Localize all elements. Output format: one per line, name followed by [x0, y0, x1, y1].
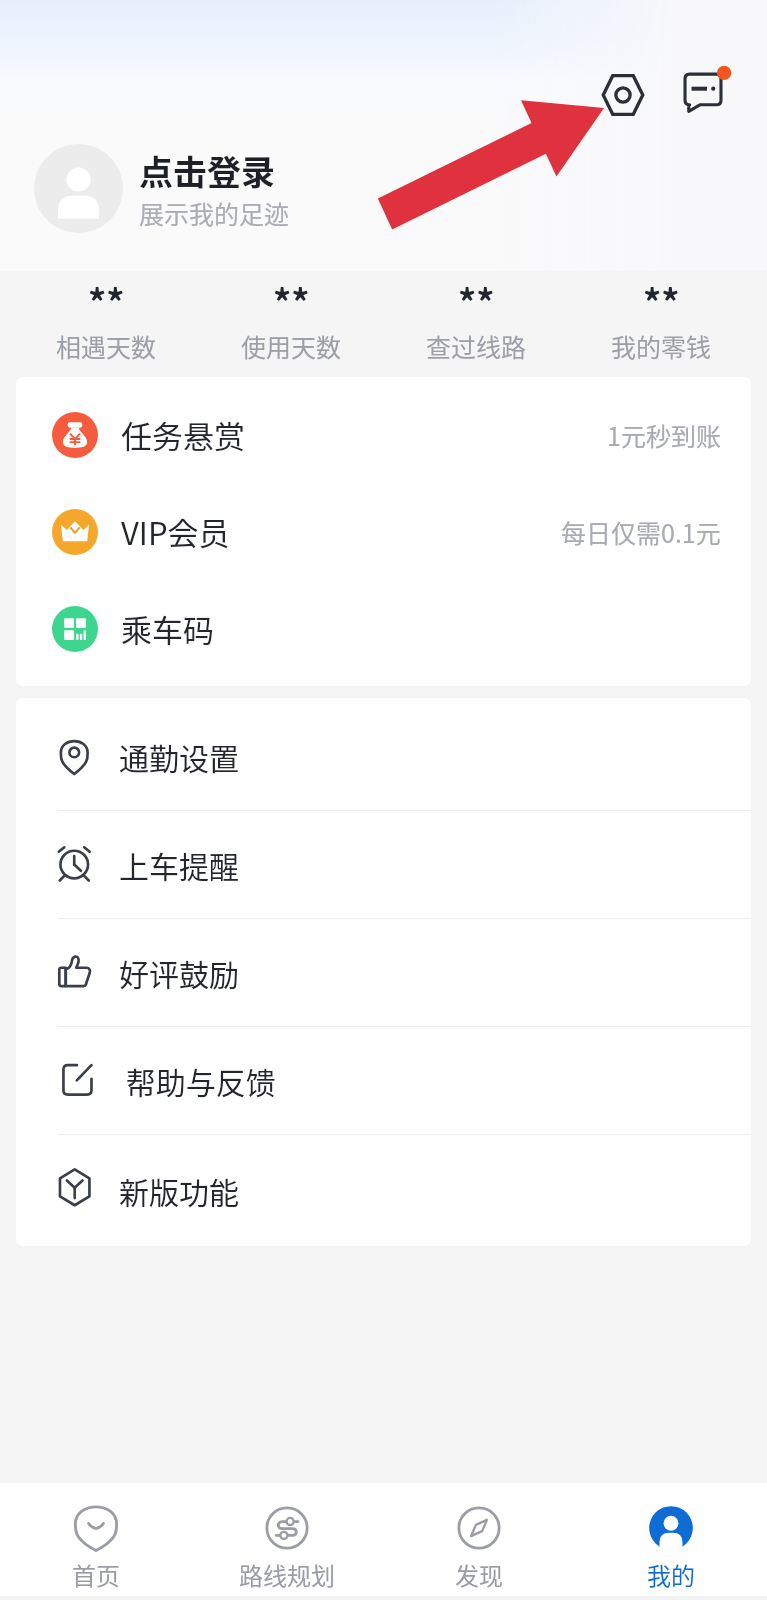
staticText: 使用天数 [241, 328, 342, 364]
button[interactable]: 任务悬赏 [16, 386, 751, 483]
button[interactable]: 首页 [0, 1504, 191, 1596]
button[interactable]: Messages [672, 58, 734, 120]
staticText: 好评鼓励 [119, 951, 239, 994]
button[interactable]: VIP会员 [16, 483, 751, 580]
button[interactable]: 通勤设置 [16, 703, 751, 811]
staticText: 每日仅需0.1元 [561, 514, 721, 550]
staticText: 展示我的足迹 [139, 195, 290, 231]
staticText: 1元秒到账 [607, 417, 721, 453]
staticText: VIP会员 [121, 509, 230, 554]
staticText: 路线规划 [239, 1557, 335, 1592]
button[interactable]: 发现 [383, 1504, 575, 1596]
button[interactable]: 乘车码 [16, 580, 751, 677]
staticText: 新版功能 [119, 1169, 239, 1212]
staticText: ** [273, 274, 310, 326]
button[interactable]: ** [384, 271, 569, 375]
staticText: 帮助与反馈 [119, 1059, 276, 1102]
button[interactable]: Settings [593, 65, 653, 125]
button[interactable]: ** [569, 271, 754, 375]
staticText: ** [643, 274, 680, 326]
staticText: 上车提醒 [119, 843, 239, 886]
staticText: 首页 [72, 1557, 120, 1592]
staticText: 我的 [647, 1557, 695, 1592]
button[interactable]: 我的 [575, 1504, 767, 1596]
staticText: 我的零钱 [611, 328, 712, 364]
staticText: 相遇天数 [56, 328, 157, 364]
button[interactable]: 上车提醒 [16, 811, 751, 919]
button[interactable]: 路线规划 [191, 1504, 383, 1596]
button[interactable]: ** [199, 271, 384, 375]
button[interactable]: 帮助与反馈 [16, 1027, 751, 1135]
staticText: 通勤设置 [119, 735, 239, 778]
staticText: 任务悬赏 [121, 412, 245, 457]
button[interactable]: 点击登录 [34, 144, 290, 233]
staticText: 乘车码 [121, 606, 214, 651]
button[interactable]: ** [13, 271, 199, 375]
staticText: ** [458, 274, 495, 326]
staticText: 点击登录 [139, 146, 275, 195]
button[interactable]: 新版功能 [16, 1135, 751, 1246]
staticText: ** [88, 274, 125, 326]
staticText: 查过线路 [426, 328, 527, 364]
button[interactable]: 好评鼓励 [16, 919, 751, 1027]
staticText: 发现 [455, 1557, 503, 1592]
